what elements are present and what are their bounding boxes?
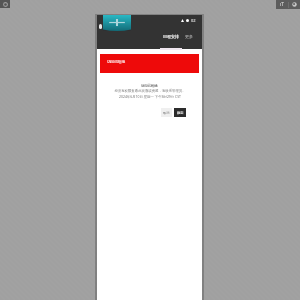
button[interactable]: Menu: [0, 0, 10, 8]
button[interactable]: 更多: [182, 30, 196, 49]
staticText: 日程安排: [163, 34, 179, 39]
staticText: 您没有权限查看此页面或资源，请联系管理员。: [114, 89, 186, 93]
staticText: 2024年6月10日 星期一 下午3时29分 CST: [119, 94, 181, 99]
staticText: 确定: [177, 111, 184, 115]
staticText: 取消: [163, 111, 170, 115]
button[interactable]: 确定: [174, 108, 186, 117]
staticText: ıT: [280, 1, 285, 8]
staticText: 访问已拒绝: [107, 60, 125, 65]
staticText: 更多: [185, 34, 193, 39]
button[interactable]: Text style: [276, 0, 288, 9]
button[interactable]: Settings: [289, 0, 300, 9]
staticText: 访问已拒绝: [141, 84, 158, 88]
button[interactable]: 访问已拒绝: [100, 54, 199, 73]
staticText: 02: [191, 18, 196, 23]
button[interactable]: 日程安排: [160, 30, 182, 49]
button[interactable]: 取消: [161, 108, 172, 117]
button[interactable]: Logo: [103, 15, 131, 31]
